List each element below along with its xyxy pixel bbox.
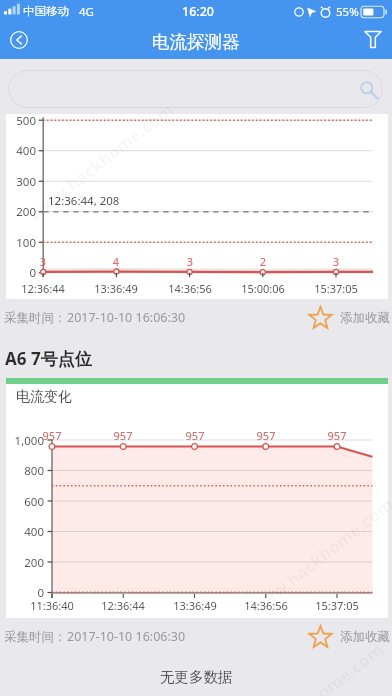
staticText: 400: [6, 524, 44, 540]
staticText: 4G: [79, 4, 94, 20]
staticText: 957: [109, 428, 137, 443]
staticText: 3: [326, 254, 346, 269]
button[interactable]: Search: [8, 70, 383, 108]
button[interactable]: Back: [4, 25, 34, 55]
staticText: 12:36:44: [91, 598, 155, 613]
staticText: 2017-10-10 16:06:30: [67, 309, 186, 326]
staticText: 957: [181, 428, 209, 443]
staticText: 无更多数据: [160, 668, 233, 686]
staticText: www.hackhome.com: [234, 638, 388, 696]
staticText: 957: [38, 428, 66, 443]
staticText: 2017-10-10 16:06:30: [67, 628, 186, 645]
staticText: 200: [6, 555, 44, 571]
staticText: 957: [252, 428, 280, 443]
button[interactable]: 添加收藏: [308, 624, 390, 649]
staticText: 2: [253, 254, 273, 269]
staticText: 15:37:05: [305, 598, 369, 613]
other: Search: [360, 81, 377, 98]
staticText: 电流变化: [16, 388, 72, 406]
staticText: 中国移动: [23, 4, 69, 18]
staticText: 12:36:44: [11, 281, 75, 296]
staticText: 0: [6, 265, 36, 281]
staticText: 13:36:49: [163, 598, 227, 613]
staticText: 12:36:44, 208: [48, 193, 120, 209]
staticText: 15:37:05: [304, 281, 368, 296]
staticText: 0: [6, 585, 44, 601]
staticText: 16:20: [182, 3, 215, 20]
staticText: 200: [6, 204, 36, 220]
staticText: 3: [180, 254, 200, 269]
staticText: 300: [6, 174, 36, 190]
staticText: 采集时间：: [4, 310, 67, 326]
staticText: 800: [6, 463, 44, 479]
staticText: 14:36:56: [158, 281, 222, 296]
staticText: www.hackhome.com: [244, 493, 392, 620]
staticText: 957: [323, 428, 351, 443]
staticText: 11:36:40: [20, 598, 84, 613]
staticText: 电流探测器: [152, 31, 240, 53]
staticText: A6 7号点位: [5, 347, 92, 370]
staticText: 100: [6, 235, 36, 251]
staticText: 13:36:49: [84, 281, 148, 296]
staticText: 1,000: [6, 433, 44, 449]
staticText: 添加收藏: [340, 629, 390, 645]
button[interactable]: 添加收藏: [308, 305, 390, 330]
staticText: 3: [33, 254, 53, 269]
staticText: 400: [6, 143, 36, 159]
staticText: 添加收藏: [340, 310, 390, 326]
staticText: 15:00:06: [231, 281, 295, 296]
button[interactable]: Filter: [359, 25, 387, 53]
staticText: 采集时间：: [4, 629, 67, 645]
staticText: 55%: [336, 4, 359, 20]
staticText: 500: [6, 113, 36, 129]
staticText: 600: [6, 494, 44, 510]
staticText: 14:36:56: [234, 598, 298, 613]
staticText: www.hackhome.com: [24, 98, 178, 225]
staticText: 4: [106, 254, 126, 269]
